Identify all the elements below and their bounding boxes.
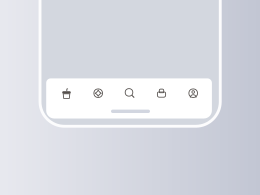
button[interactable]: Orders [157,89,166,98]
button[interactable]: Explore [94,89,102,97]
button[interactable]: Drinks [62,88,71,99]
button[interactable]: Search [125,89,134,98]
button[interactable]: Account [189,89,197,97]
